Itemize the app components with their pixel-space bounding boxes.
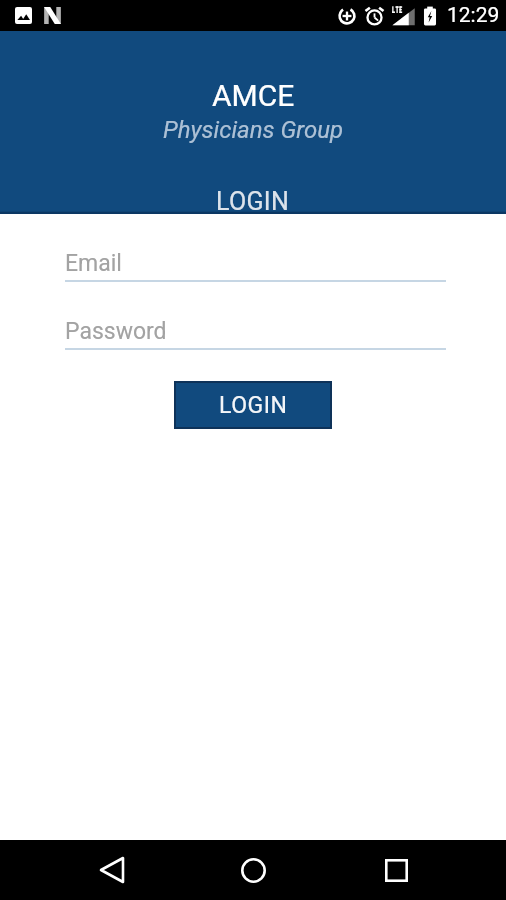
other: Do not disturb <box>338 7 356 25</box>
staticText: LOGIN <box>219 392 288 419</box>
other: Battery charging <box>423 6 437 26</box>
staticText: Physicians Group <box>163 116 344 144</box>
button[interactable]: Home <box>228 845 278 895</box>
other: Screenshot <box>15 7 32 24</box>
other: LTE signal <box>391 5 415 26</box>
button[interactable]: Back <box>87 845 137 895</box>
button[interactable]: Email <box>65 250 446 282</box>
button[interactable]: Password <box>65 318 446 350</box>
staticText: Email <box>65 250 122 277</box>
staticText: Password <box>65 318 167 345</box>
staticText: 12:29 <box>447 3 500 28</box>
staticText: LOGIN <box>216 187 290 214</box>
other: Alarm set <box>364 7 385 25</box>
button[interactable]: LOGIN <box>174 381 332 429</box>
staticText: AMCE <box>212 78 295 113</box>
other: App notification <box>43 7 62 24</box>
button[interactable]: Recent apps <box>371 845 421 895</box>
